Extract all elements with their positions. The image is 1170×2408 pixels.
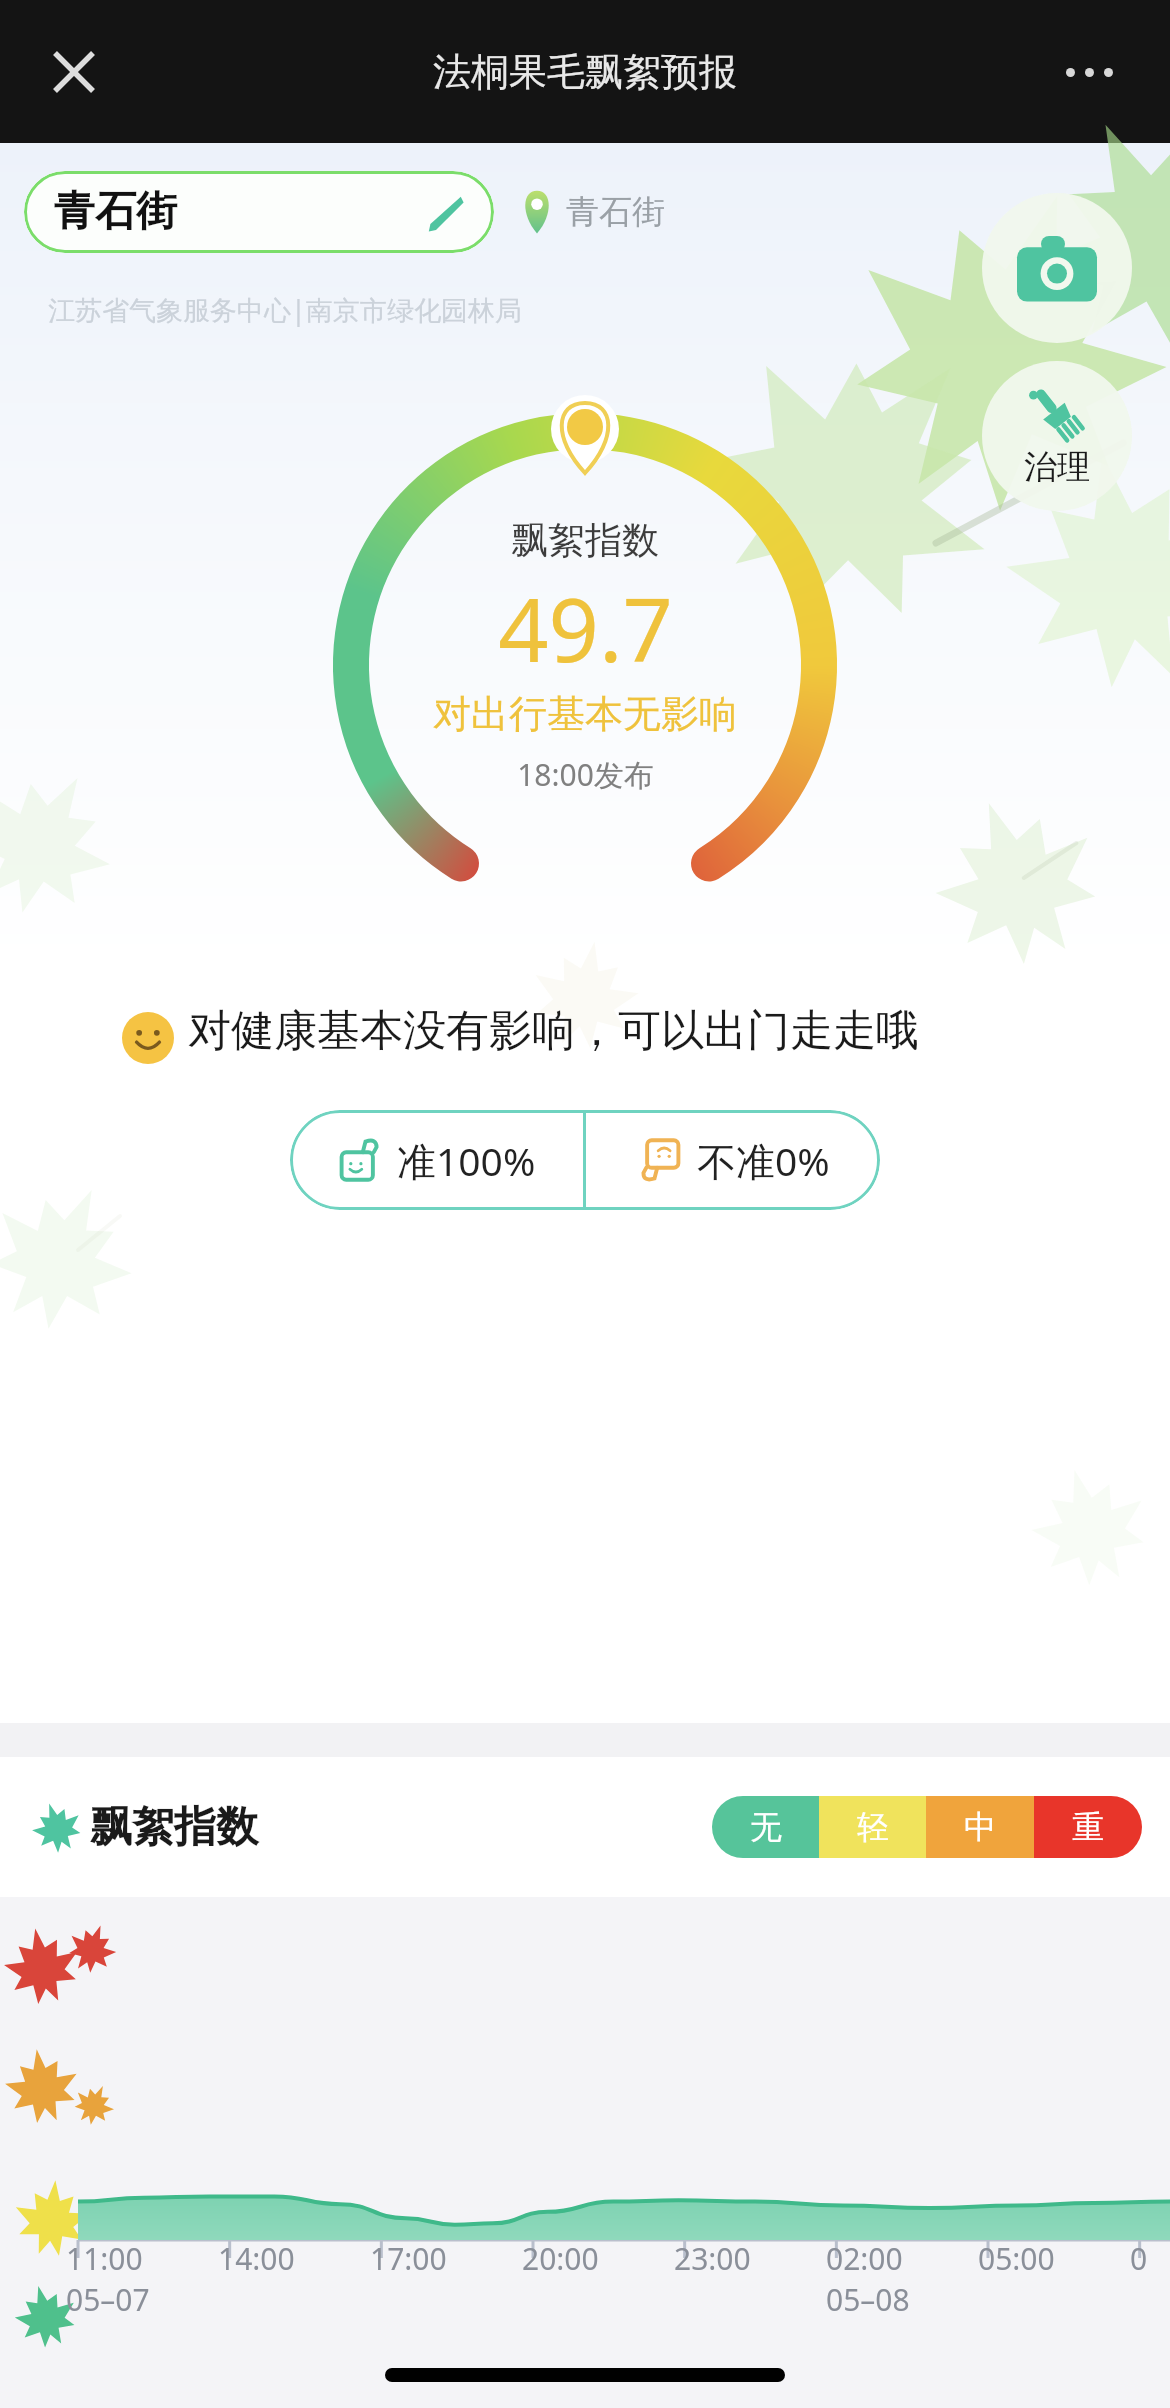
button[interactable]: 不准0%: [586, 1110, 880, 1210]
staticText: 轻: [857, 1807, 889, 1847]
staticText: 11:00: [66, 2238, 143, 2279]
staticText: 05:00: [978, 2238, 1055, 2279]
staticText: 江苏省气象服务中心|南京市绿化园林局: [48, 291, 522, 328]
button[interactable]: Close: [28, 26, 120, 118]
staticText: 05–07: [66, 2279, 150, 2320]
staticText: 不准0%: [697, 1134, 830, 1187]
button[interactable]: 治理: [982, 361, 1132, 511]
staticText: 05–08: [826, 2279, 910, 2320]
button[interactable]: Camera: [982, 193, 1132, 343]
button[interactable]: 准100%: [290, 1110, 583, 1210]
staticText: 49.7: [498, 568, 673, 688]
staticText: 02:00: [826, 2238, 903, 2279]
staticText: 飘絮指数: [90, 1801, 258, 1854]
staticText: 治理: [1024, 446, 1090, 488]
staticText: 青石街: [54, 186, 177, 238]
staticText: 对出行基本无影响: [433, 690, 737, 738]
staticText: 18:00发布: [517, 754, 654, 795]
button[interactable]: More options: [1046, 29, 1132, 115]
staticText: 重: [1072, 1807, 1104, 1847]
staticText: 无: [750, 1807, 782, 1847]
staticText: 14:00: [218, 2238, 295, 2279]
staticText: 17:00: [370, 2238, 447, 2279]
staticText: 对健康基本没有影响，可以出门走走哦: [188, 1004, 1048, 1058]
staticText: 青石街: [566, 191, 665, 233]
button[interactable]: 青石街: [24, 171, 494, 253]
staticText: 法桐果毛飘絮预报: [433, 48, 737, 96]
staticText: 23:00: [674, 2238, 751, 2279]
staticText: 飘絮指数: [511, 517, 659, 564]
staticText: 0: [1130, 2238, 1148, 2279]
staticText: 中: [964, 1807, 996, 1847]
staticText: 准100%: [397, 1134, 536, 1187]
staticText: 20:00: [522, 2238, 599, 2279]
